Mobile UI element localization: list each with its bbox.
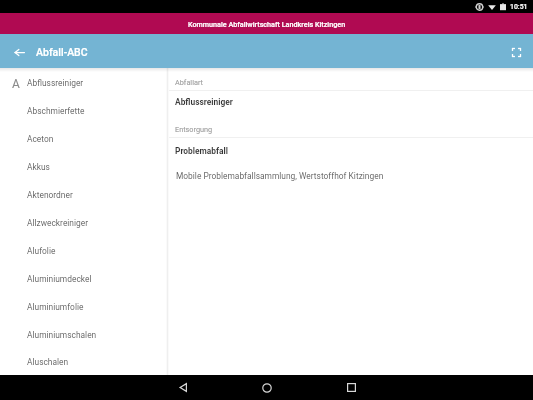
staticText: Kommunale Abfallwirtschaft Landkreis Kit… — [188, 20, 346, 28]
staticText: Alufolie — [27, 246, 56, 256]
button[interactable]: A — [0, 69, 166, 97]
staticText: Aceton — [27, 134, 54, 144]
button[interactable]: Aluschalen — [0, 349, 166, 375]
staticText: Entsorgung — [175, 125, 213, 134]
button[interactable]: Aceton — [0, 125, 166, 153]
staticText: Akkus — [27, 162, 50, 172]
staticText: Abflussreiniger — [175, 97, 233, 107]
button[interactable]: Back — [167, 375, 199, 400]
button[interactable]: Back — [7, 40, 31, 64]
staticText: 10:51 — [510, 3, 528, 11]
button[interactable]: Home — [251, 375, 283, 400]
staticText: Aluminiumschalen — [27, 330, 97, 340]
staticText: Aluminiumdeckel — [27, 274, 92, 284]
staticText: Mobile Problemabfallsammlung, Wertstoffh… — [176, 171, 384, 181]
button[interactable]: Recent apps — [335, 375, 367, 400]
staticText: Aluschalen — [27, 357, 69, 367]
staticText: Abschmierfette — [27, 106, 85, 116]
staticText: A — [12, 77, 20, 91]
staticText: Aktenordner — [27, 190, 73, 200]
button[interactable]: Aktenordner — [0, 181, 166, 209]
staticText: Abfallart — [175, 78, 203, 87]
staticText: Aluminiumfolie — [27, 302, 84, 312]
button[interactable]: Fullscreen — [505, 41, 527, 63]
staticText: Problemabfall — [175, 146, 229, 156]
staticText: Abfall-ABC — [36, 46, 88, 58]
button[interactable]: Alufolie — [0, 237, 166, 265]
button[interactable]: Aluminiumdeckel — [0, 265, 166, 293]
button[interactable]: Akkus — [0, 153, 166, 181]
staticText: Allzweckreiniger — [27, 218, 89, 228]
button[interactable]: Aluminiumfolie — [0, 293, 166, 321]
button[interactable]: Aluminiumschalen — [0, 321, 166, 349]
button[interactable]: Allzweckreiniger — [0, 209, 166, 237]
button[interactable]: Abschmierfette — [0, 97, 166, 125]
staticText: Abflussreiniger — [27, 78, 84, 88]
